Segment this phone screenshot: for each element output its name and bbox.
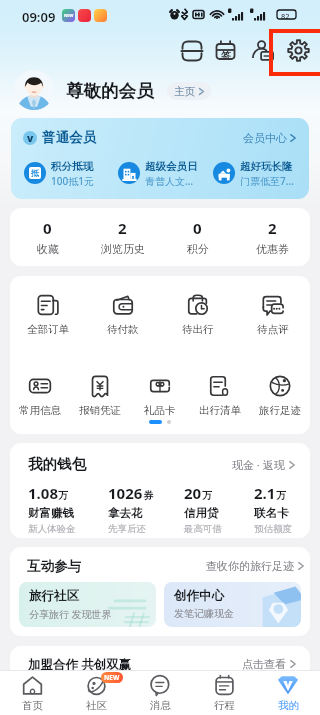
staticText: 2 [268, 218, 277, 238]
staticText: 行程 [214, 699, 235, 712]
staticText: 出行清单 [199, 404, 241, 417]
staticText: 待出行 [182, 323, 214, 336]
staticText: 旅行社区 [29, 588, 79, 604]
staticText: 最高可借 [184, 523, 222, 535]
staticText: 万 [58, 489, 68, 502]
staticText: 2.1 [254, 483, 276, 503]
button[interactable]: 报销凭证 [70, 375, 130, 417]
button[interactable]: 0 [10, 208, 85, 266]
staticText: 0 [43, 218, 52, 238]
button[interactable]: 2 [85, 208, 160, 266]
staticText: 0 [193, 218, 202, 238]
button[interactable]: 行程 [192, 671, 256, 715]
staticText: 查收你的旅行足迹 [206, 559, 294, 573]
button[interactable]: Split screen [177, 34, 207, 67]
staticText: 财富赚钱 [28, 506, 74, 520]
staticText: 信用贷 [184, 506, 219, 520]
staticText: V [27, 132, 34, 144]
button[interactable]: Customer service [247, 34, 277, 67]
staticText: 超级会员日 [145, 160, 198, 173]
button[interactable]: 现金 · 返现 [232, 457, 296, 472]
button[interactable]: 出行清单 [190, 375, 250, 417]
staticText: 创作中心 [174, 588, 224, 604]
staticText: 2 [118, 218, 127, 238]
button[interactable]: 加盟合作 共创双赢 [10, 646, 310, 686]
button[interactable]: 20 [184, 483, 222, 535]
staticText: 我的 [278, 699, 299, 712]
staticText: 礼品卡 [144, 404, 176, 417]
button[interactable]: 0 [160, 208, 235, 266]
staticText: 社区 [86, 699, 107, 712]
staticText: 分享旅行 发现世界 [29, 607, 112, 621]
button[interactable]: 礼品卡 [130, 375, 190, 417]
button[interactable]: 抵 [24, 160, 94, 186]
staticText: 万 [276, 489, 286, 502]
button[interactable]: NEW [64, 671, 128, 715]
staticText: 浏览历史 [101, 242, 145, 256]
staticText: NEW [104, 673, 120, 682]
button[interactable]: 待付款 [85, 294, 160, 336]
staticText: 点击查看 [242, 657, 286, 671]
button[interactable]: 待出行 [160, 294, 235, 336]
button[interactable]: 常用信息 [10, 375, 70, 417]
staticText: 会员中心 [243, 131, 287, 145]
staticText: 积分抵现 [51, 160, 93, 173]
staticText: 先享后还 [108, 523, 146, 535]
button[interactable]: 创作中心 [164, 582, 301, 627]
button[interactable]: 我的 [256, 671, 320, 715]
staticText: 常用信息 [19, 404, 61, 417]
button[interactable]: 会员中心 [243, 131, 297, 145]
button[interactable]: 主页 [167, 82, 211, 100]
staticText: 20 [184, 483, 202, 503]
button[interactable]: V [11, 118, 309, 199]
staticText: 联名卡 [254, 506, 289, 520]
staticText: NEW [64, 13, 74, 18]
staticText: 报销凭证 [79, 404, 121, 417]
staticText: 1.08 [28, 483, 58, 503]
button[interactable]: Settings [283, 34, 313, 67]
button[interactable]: 待点评 [235, 294, 310, 336]
staticText: 互动参与 [27, 558, 81, 575]
button[interactable]: 消息 [128, 671, 192, 715]
staticText: 现金 · 返现 [232, 457, 285, 472]
staticText: 收藏 [37, 242, 59, 256]
staticText: 超好玩长隆 [240, 160, 293, 173]
staticText: 拿去花 [108, 506, 143, 520]
staticText: 积分 [187, 242, 209, 256]
staticText: 预估额度 [254, 523, 292, 535]
staticText: 首页 [22, 699, 43, 712]
button[interactable]: Avatar [14, 70, 54, 110]
button[interactable]: 旅行社区 [19, 582, 156, 627]
button[interactable]: 全部订单 [10, 294, 85, 336]
staticText: 待点评 [257, 323, 289, 336]
staticText: 优惠券 [256, 242, 289, 256]
staticText: 我的钱包 [28, 455, 86, 473]
staticText: 全部订单 [27, 323, 69, 336]
button[interactable]: 1026 [108, 483, 153, 535]
button[interactable]: 超好玩长隆 [213, 160, 294, 186]
button[interactable]: 2 [235, 208, 310, 266]
staticText: 加盟合作 共创双赢 [28, 656, 132, 673]
button[interactable]: 2.1 [254, 483, 292, 535]
button[interactable]: 首页 [0, 671, 64, 715]
staticText: 万 [202, 489, 212, 502]
staticText: 09:09 [22, 8, 56, 26]
staticText: 门票低至7… [240, 174, 294, 186]
button[interactable]: 查收你的旅行足迹 [206, 559, 305, 573]
button[interactable]: 1.08 [28, 483, 76, 535]
staticText: 新人体验金 [28, 523, 76, 535]
staticText: 旅行足迹 [259, 404, 301, 417]
staticText: 青普人文… [145, 174, 194, 186]
staticText: 尊敬的会员 [66, 80, 154, 102]
staticText: 抵 [31, 168, 39, 178]
staticText: 签 [221, 49, 231, 62]
button[interactable]: 旅行足迹 [250, 375, 310, 417]
staticText: 发笔记赚现金 [174, 607, 234, 620]
staticText: 主页 [174, 85, 195, 98]
staticText: 82 [281, 11, 290, 21]
button[interactable]: Check in [210, 34, 240, 67]
staticText: 券 [143, 489, 153, 502]
staticText: 待付款 [107, 323, 139, 336]
staticText: 100抵1元 [51, 174, 94, 186]
button[interactable]: 超级会员日 [118, 160, 198, 186]
